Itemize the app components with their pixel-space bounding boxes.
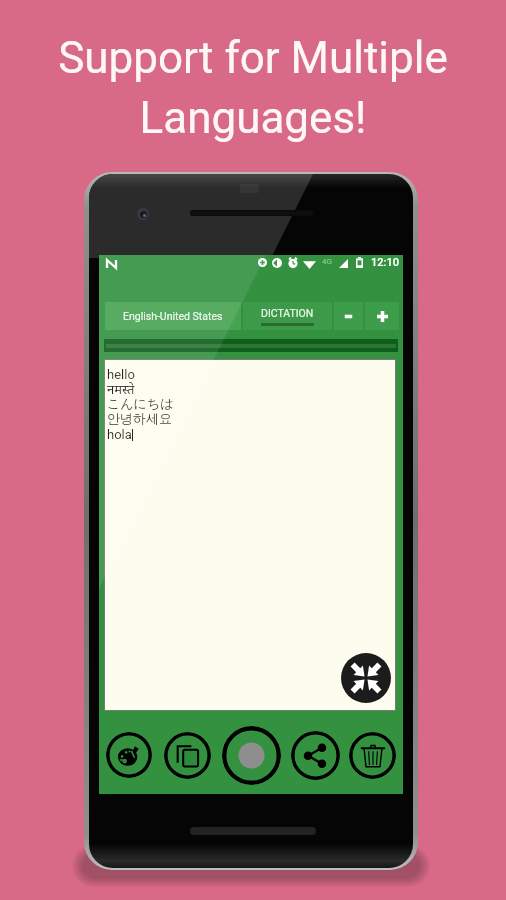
staticText: hello नमस्ते こんにちは 안녕하세요 hola	[107, 367, 174, 442]
staticText: English-United States	[123, 310, 223, 322]
staticText: 12:10	[371, 256, 399, 269]
button[interactable]: Exit fullscreen	[341, 653, 391, 703]
button[interactable]: Decrease size	[334, 302, 363, 330]
staticText: Support for Multiple Languages!	[0, 32, 506, 143]
button[interactable]: Share	[291, 731, 340, 780]
button[interactable]: Colour palette	[106, 732, 152, 778]
staticText: DICTATION	[261, 307, 314, 319]
button[interactable]: English-United States	[105, 302, 241, 330]
staticText: 4G	[322, 257, 332, 266]
button[interactable]: Record	[222, 726, 281, 785]
button[interactable]: Increase size	[365, 302, 399, 330]
button[interactable]: Copy	[164, 732, 211, 779]
button[interactable]: DICTATION	[243, 302, 332, 330]
button[interactable]: Delete	[349, 732, 396, 779]
